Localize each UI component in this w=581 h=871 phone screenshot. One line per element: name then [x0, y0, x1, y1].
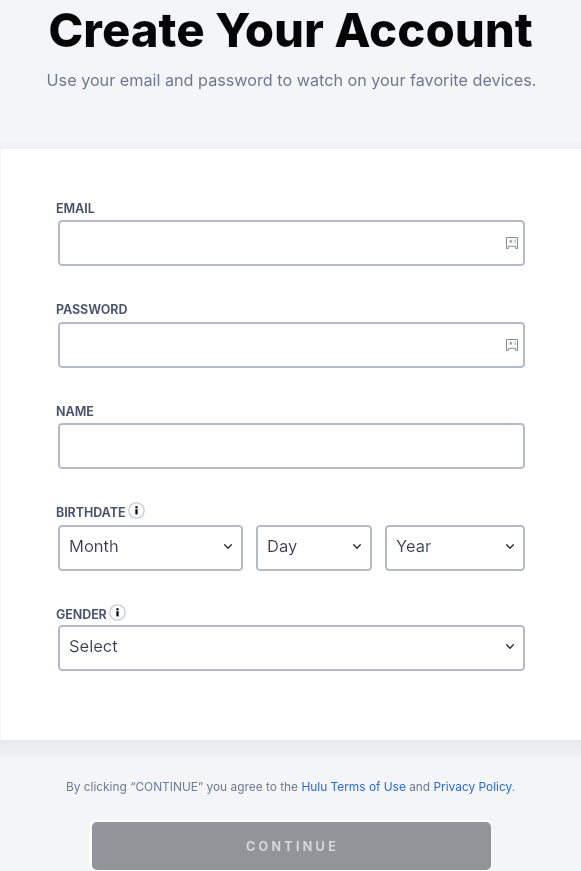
- staticText: GENDER: [56, 607, 107, 622]
- staticText: Select: [69, 636, 118, 656]
- staticText: BIRTHDATE: [56, 505, 126, 520]
- staticText: Month: [69, 536, 119, 556]
- button[interactable]: Password: [58, 322, 525, 368]
- staticText: EMAIL: [56, 201, 95, 216]
- button[interactable]: More information: [128, 502, 145, 519]
- staticText: Day: [267, 536, 298, 556]
- staticText: Year: [396, 536, 432, 556]
- staticText: PASSWORD: [56, 302, 128, 317]
- button[interactable]: Year: [385, 525, 525, 571]
- button[interactable]: Month: [58, 525, 243, 571]
- button[interactable]: Gender: [58, 625, 525, 671]
- staticText: By clicking “CONTINUE” you agree to the …: [0, 779, 581, 793]
- staticText: CONTINUE: [246, 839, 340, 854]
- button[interactable]: Email: [58, 220, 525, 266]
- staticText: Use your email and password to watch on …: [1, 70, 581, 90]
- button[interactable]: More information: [109, 604, 126, 621]
- staticText: Create Your Account: [0, 1, 581, 58]
- button[interactable]: Day: [256, 525, 372, 571]
- button[interactable]: CONTINUE: [92, 822, 491, 870]
- staticText: NAME: [56, 404, 94, 419]
- button[interactable]: Name: [58, 423, 525, 469]
